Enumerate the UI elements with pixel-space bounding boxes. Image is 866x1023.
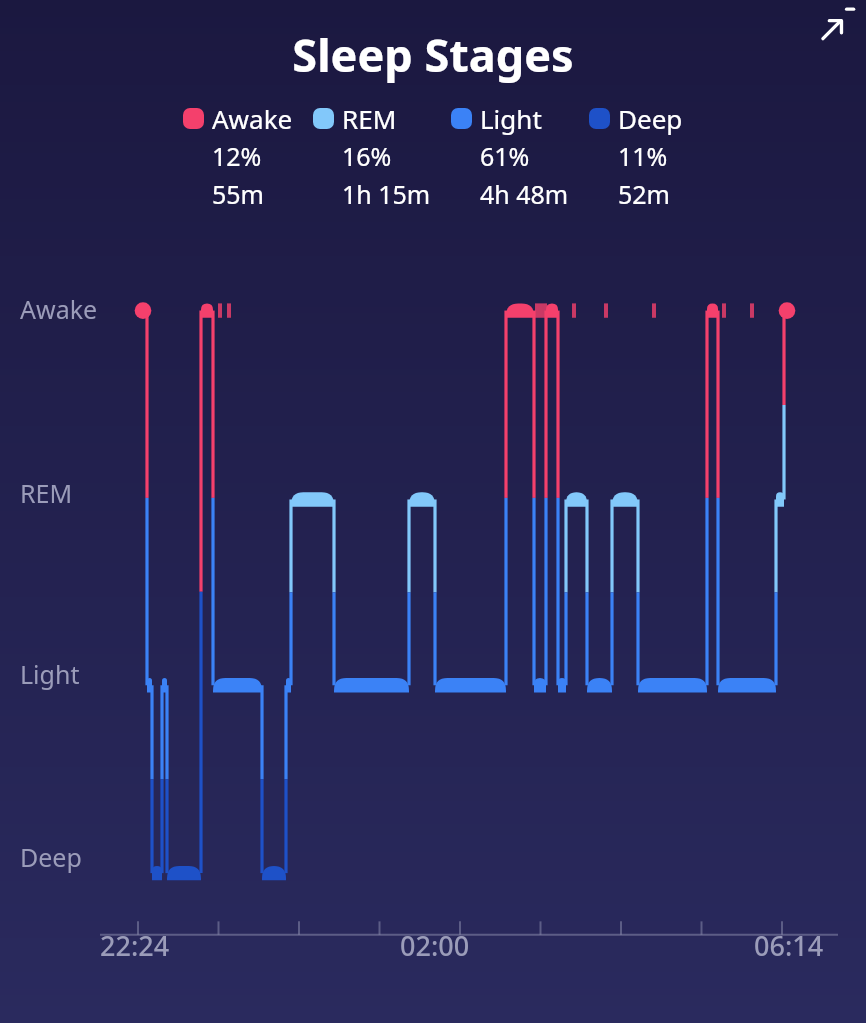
staticText: Deep — [618, 101, 683, 136]
button[interactable]: Light — [451, 101, 569, 211]
staticText: Awake — [20, 292, 98, 326]
staticText: 55m — [212, 177, 264, 211]
staticText: 4h 48m — [480, 177, 569, 211]
staticText: REM — [342, 101, 397, 136]
staticText: 16% — [342, 139, 392, 173]
staticText: 52m — [618, 177, 670, 211]
button[interactable]: Awake — [183, 101, 293, 211]
staticText: 06:14 — [754, 927, 824, 964]
staticText: Light — [20, 657, 80, 691]
staticText: 11% — [618, 139, 668, 173]
staticText: Sleep Stages — [0, 24, 866, 85]
button[interactable]: Expand chart — [808, 0, 866, 58]
staticText: Awake — [212, 101, 293, 136]
staticText: Light — [480, 101, 542, 136]
staticText: REM — [20, 476, 73, 510]
staticText: 02:00 — [400, 927, 470, 964]
staticText: 61% — [480, 139, 530, 173]
staticText: Deep — [20, 840, 82, 874]
staticText: 1h 15m — [342, 177, 431, 211]
staticText: 12% — [212, 139, 262, 173]
staticText: 22:24 — [100, 927, 170, 964]
button[interactable]: Deep — [589, 101, 683, 211]
button[interactable]: REM — [313, 101, 431, 211]
